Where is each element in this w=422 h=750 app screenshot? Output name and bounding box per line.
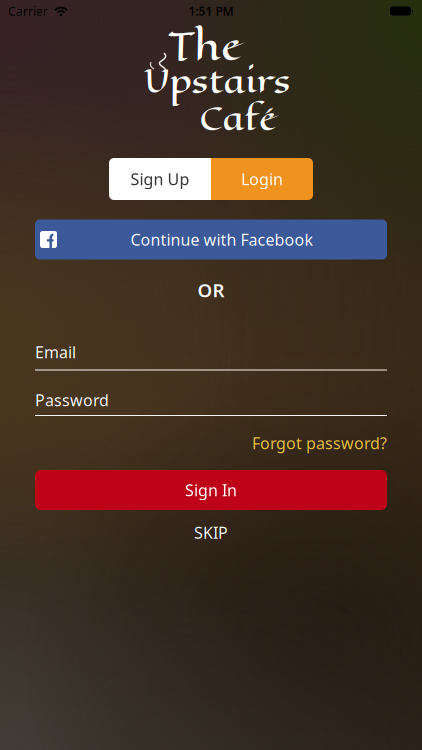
staticText: Carrier	[8, 3, 48, 19]
staticText: Sign Up	[130, 168, 189, 190]
staticText: The	[168, 17, 241, 75]
staticText: Upstairs	[143, 56, 290, 106]
staticText: Login	[241, 168, 283, 190]
staticText: Password	[35, 389, 109, 411]
staticText: Email	[35, 341, 76, 363]
button[interactable]: Forgot password?	[252, 432, 387, 454]
staticText: Continue with Facebook	[130, 229, 313, 250]
staticText: Café	[199, 93, 276, 143]
staticText: Sign In	[185, 479, 237, 501]
button[interactable]: Login	[211, 158, 313, 200]
staticText: 1:51 PM	[188, 3, 233, 19]
button[interactable]: Sign In	[35, 470, 387, 510]
staticText: OR	[197, 278, 224, 302]
staticText: Forgot password?	[252, 432, 387, 454]
staticText: SKIP	[194, 522, 228, 543]
button[interactable]: SKIP	[194, 522, 228, 543]
button[interactable]: Continue with Facebook	[35, 219, 387, 259]
button[interactable]: Sign Up	[109, 158, 211, 200]
